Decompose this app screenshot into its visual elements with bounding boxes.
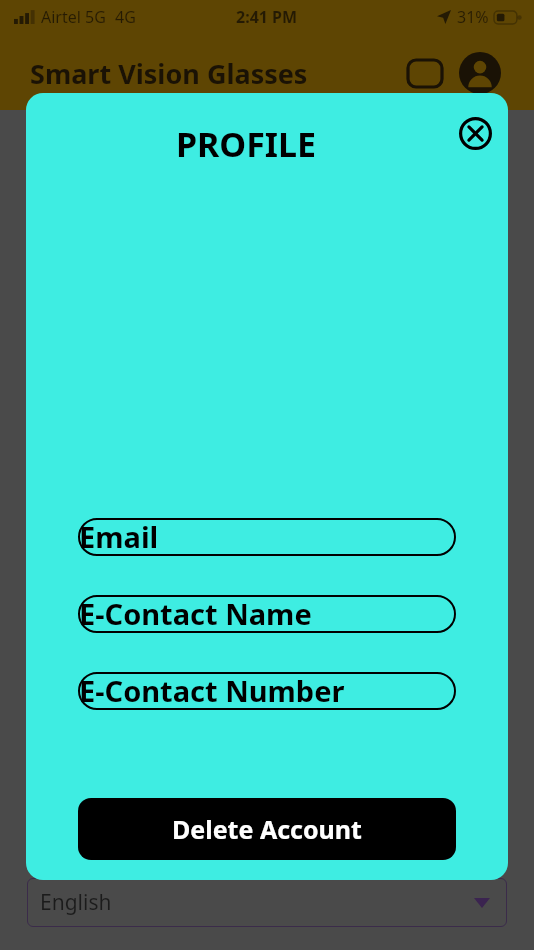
- button[interactable]: English: [27, 878, 507, 927]
- button[interactable]: Email: [78, 518, 456, 556]
- staticText: E-Contact Number: [79, 671, 345, 709]
- staticText: 4G: [115, 6, 136, 28]
- staticText: E-Contact Name: [79, 594, 312, 632]
- button[interactable]: Close: [455, 113, 495, 153]
- staticText: Airtel 5G: [41, 6, 106, 28]
- button[interactable]: Account: [456, 49, 504, 97]
- button[interactable]: Messages: [402, 50, 448, 96]
- button[interactable]: E-Contact Name: [78, 595, 456, 633]
- staticText: 31%: [457, 6, 489, 28]
- button[interactable]: Delete Account: [78, 798, 456, 860]
- button[interactable]: E-Contact Number: [78, 672, 456, 710]
- staticText: 2:41 PM: [236, 6, 298, 28]
- staticText: Smart Vision Glasses: [30, 55, 308, 92]
- staticText: Delete Account: [172, 812, 362, 846]
- staticText: Email: [79, 517, 159, 555]
- staticText: English: [40, 888, 112, 917]
- staticText: PROFILE: [26, 121, 466, 167]
